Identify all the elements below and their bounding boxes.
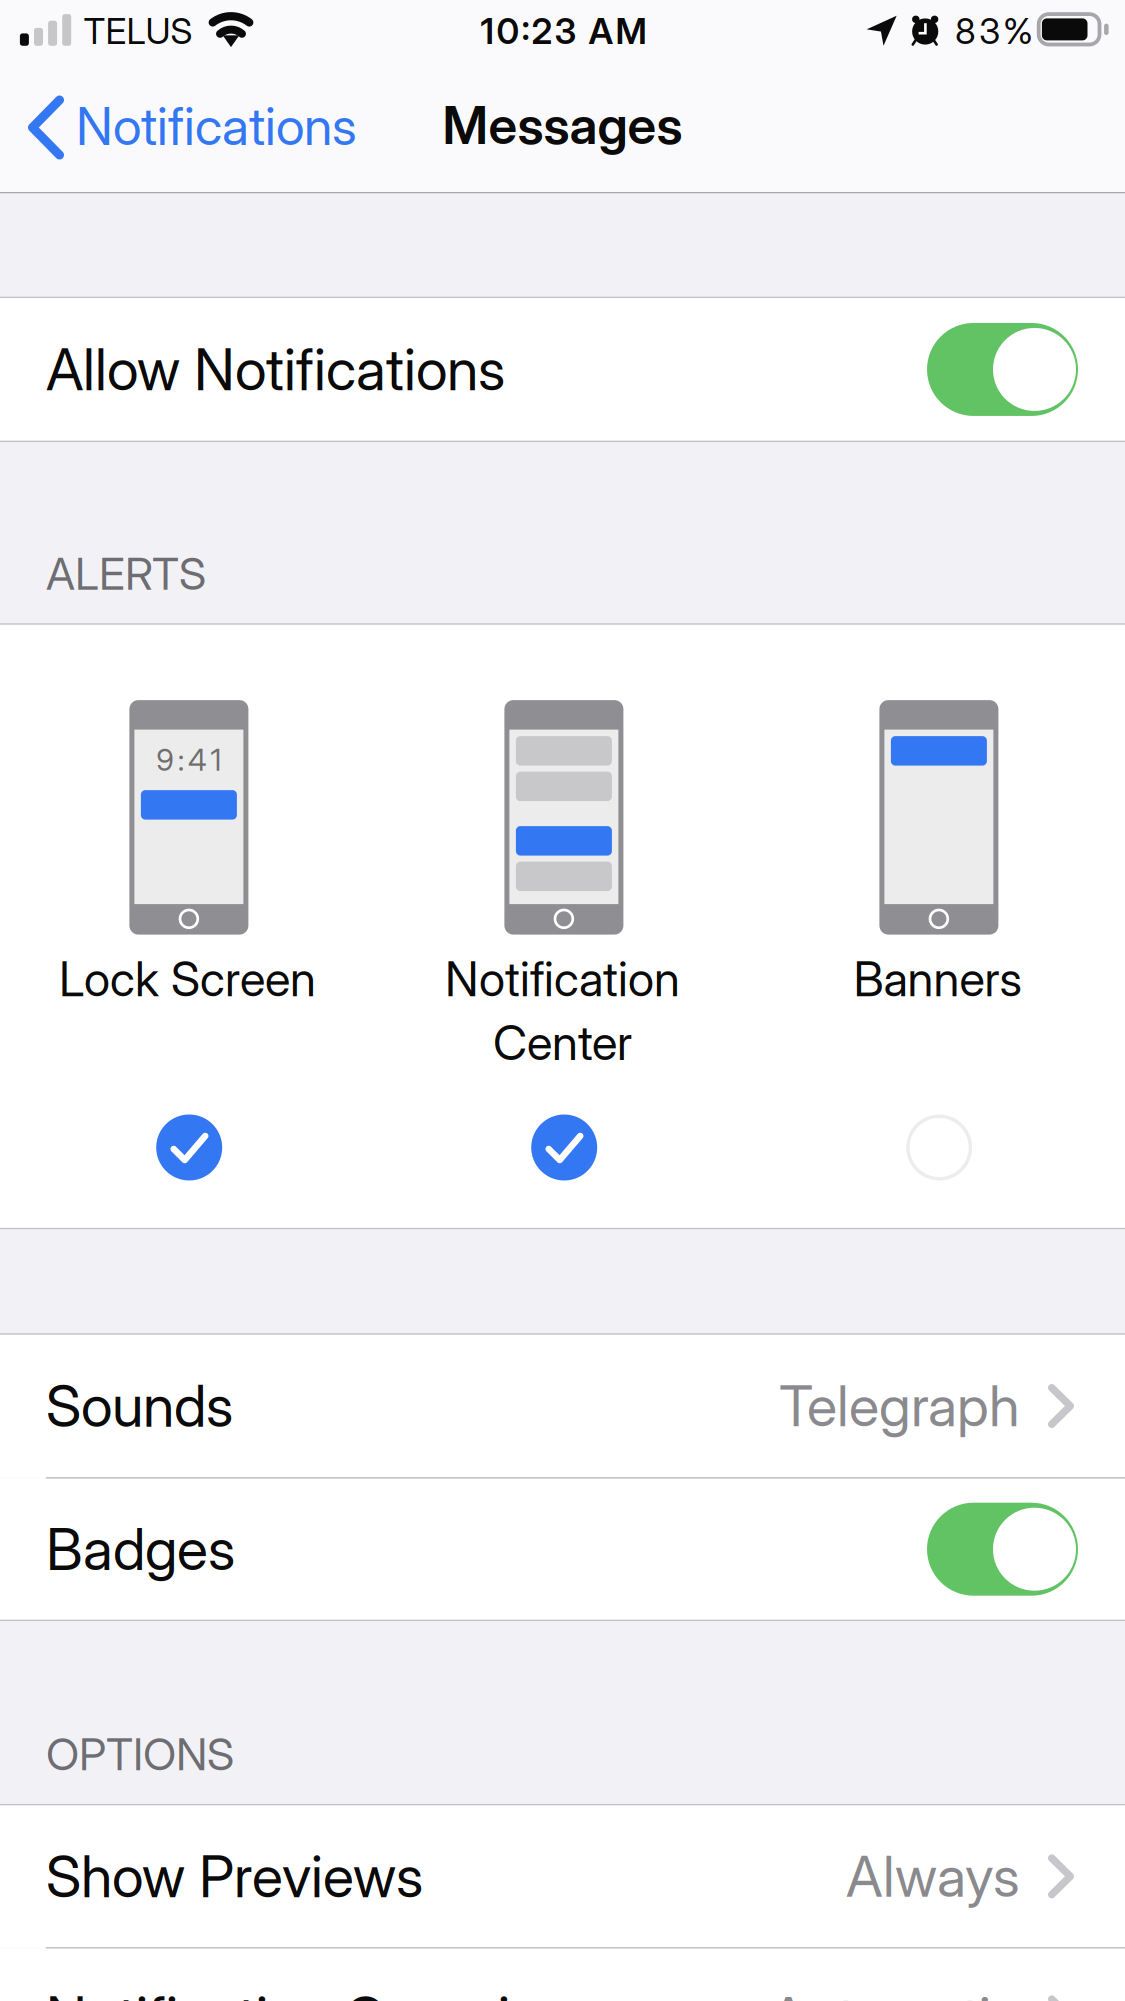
staticText: Sounds <box>46 1371 233 1441</box>
staticText: Telegraph <box>779 1372 1020 1440</box>
staticText: Banners <box>853 950 1021 1008</box>
staticText: Notifications <box>76 95 357 157</box>
staticText: Messages <box>442 94 682 156</box>
staticText: 4 <box>188 742 207 778</box>
button[interactable]: Show Previews <box>0 1805 1125 1947</box>
staticText: ALERTS <box>46 547 206 600</box>
staticText: OPTIONS <box>46 1727 234 1781</box>
button[interactable]: 9 <box>0 625 375 1228</box>
staticText: : <box>178 742 185 778</box>
staticText: Center <box>493 1014 632 1071</box>
button[interactable]: Notification <box>375 625 750 1228</box>
staticText: TELUS <box>83 9 192 52</box>
staticText: 1 <box>210 742 221 778</box>
staticText: Automatic <box>770 1983 1020 2001</box>
button[interactable]: Allow Notifications <box>0 298 1125 441</box>
staticText: 9 <box>156 742 174 778</box>
staticText: Notification Grouping <box>46 1983 573 2001</box>
staticText: 10:23 AM <box>480 9 646 52</box>
button[interactable]: Notification Grouping <box>0 1949 1125 2001</box>
button[interactable]: Sounds <box>0 1335 1125 1477</box>
button[interactable]: Banners <box>750 625 1125 1228</box>
button[interactable]: Notifications <box>0 60 375 192</box>
staticText: Allow Notifications <box>46 335 505 404</box>
staticText: Badges <box>46 1514 235 1584</box>
staticText: Show Previews <box>46 1842 423 1911</box>
staticText: Lock Screen <box>59 950 316 1008</box>
staticText: Always <box>846 1842 1020 1910</box>
button[interactable]: Badges <box>0 1479 1125 1620</box>
staticText: Notification <box>445 950 680 1008</box>
staticText: 83% <box>955 9 1033 52</box>
